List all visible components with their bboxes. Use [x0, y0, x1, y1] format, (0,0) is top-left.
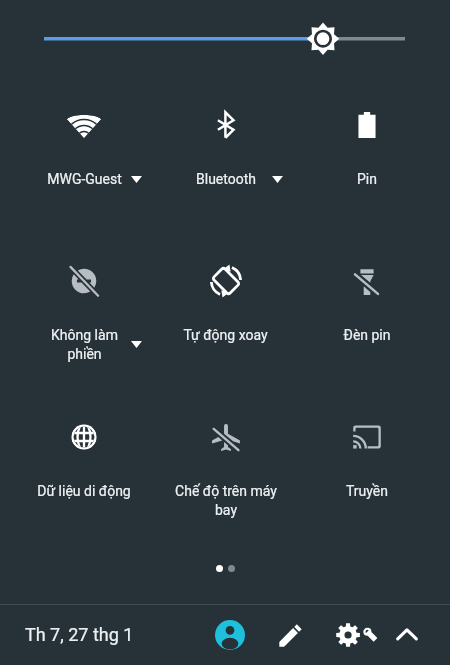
button[interactable]: Thu gọn: [385, 613, 429, 657]
staticText: Không làm phiền: [51, 327, 118, 362]
button[interactable]: Chỉnh sửa: [269, 613, 313, 657]
button[interactable]: Dữ liệu di động: [13, 419, 155, 531]
staticText: Truyền: [346, 483, 388, 499]
staticText: Đèn pin: [343, 327, 391, 343]
staticText: Th 7, 27 thg 1: [25, 624, 134, 645]
staticText: Chế độ trên máy bay: [175, 483, 277, 518]
button[interactable]: Tự động xoay: [155, 263, 296, 375]
button[interactable]: Bluetooth: [155, 107, 296, 219]
staticText: Tự động xoay: [183, 327, 268, 343]
button[interactable]: Đèn pin: [296, 263, 437, 375]
button[interactable]: Truyền: [296, 419, 437, 531]
button[interactable]: Pin: [296, 107, 437, 219]
button[interactable]: Cài đặt: [330, 613, 388, 657]
button[interactable]: Brightness: [0, 0, 450, 78]
staticText: MWG-Guest: [47, 171, 122, 187]
staticText: Dữ liệu di động: [37, 483, 131, 499]
button[interactable]: MWG-Guest: [13, 107, 155, 219]
button[interactable]: Không làm phiền: [13, 263, 155, 375]
button[interactable]: Người dùng: [208, 613, 252, 657]
staticText: Bluetooth: [196, 171, 256, 187]
button[interactable]: Chế độ trên máy bay: [155, 419, 296, 531]
staticText: Pin: [357, 171, 377, 187]
